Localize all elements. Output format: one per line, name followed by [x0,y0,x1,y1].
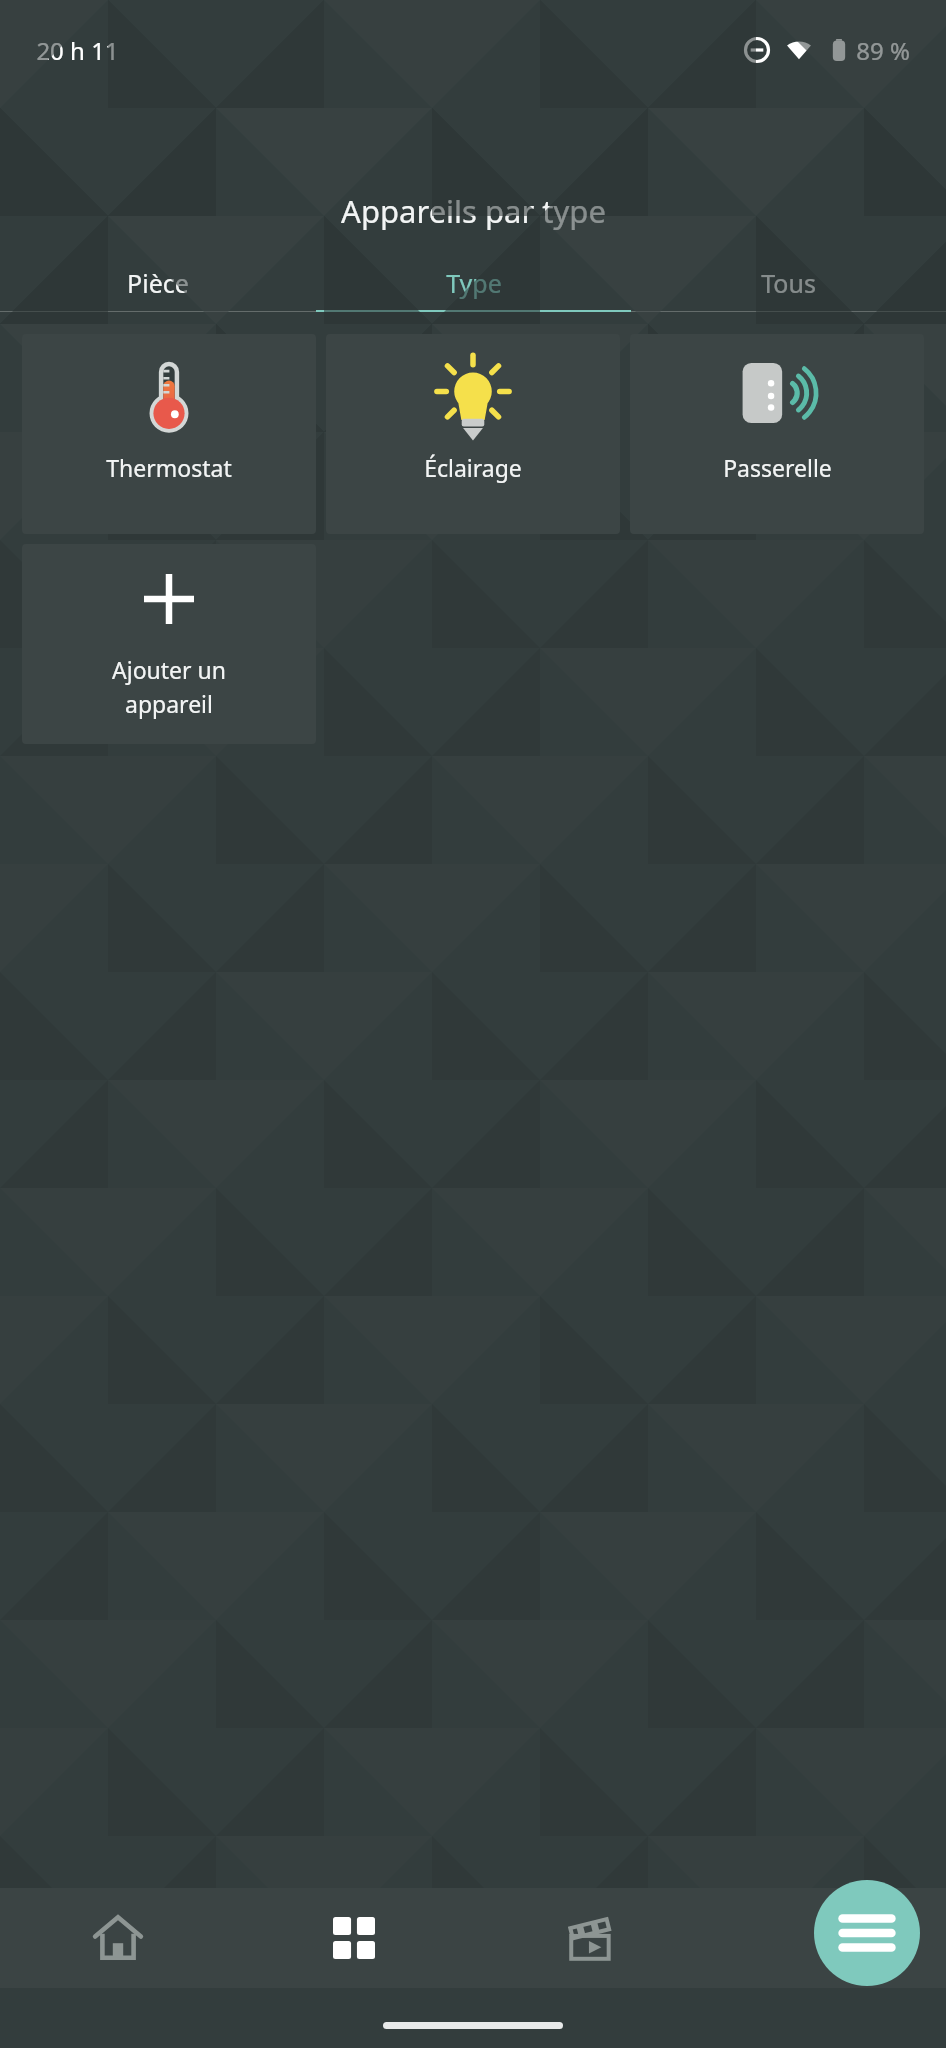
button[interactable]: Passerelle [630,334,924,534]
staticText: Tous [761,266,816,300]
staticText: Appareils par type [341,190,606,232]
button[interactable]: Tous [631,256,946,310]
button[interactable]: Type [316,256,631,310]
staticText: Thermostat [106,452,232,483]
staticText: Pièce [127,266,189,300]
button[interactable]: Thermostat [22,334,316,534]
button[interactable]: Éclairage [326,334,620,534]
staticText: Ajouter un [112,654,226,685]
staticText: Type [446,266,502,300]
button[interactable]: Menu [814,1880,920,1986]
button[interactable]: Appareils [236,1888,472,1988]
button[interactable]: Scènes [472,1888,709,1988]
staticText: Éclairage [424,452,522,483]
button[interactable]: Accueil [0,1888,236,1988]
staticText: 89 % [856,34,910,67]
button[interactable]: Ajouter un [22,544,316,744]
staticText: 20 h 11 [36,34,119,67]
staticText: appareil [125,688,213,719]
staticText: Passerelle [723,452,832,483]
button[interactable]: Pièce [0,256,316,310]
